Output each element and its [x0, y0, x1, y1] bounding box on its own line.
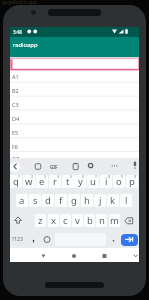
button[interactable]: l [120, 194, 132, 207]
staticText: 6 [82, 175, 85, 179]
staticText: x [51, 214, 57, 227]
button[interactable] [10, 214, 25, 227]
button[interactable] [123, 214, 139, 227]
button[interactable] [41, 233, 53, 246]
staticText: n [99, 214, 105, 227]
staticText: 1 [18, 175, 21, 179]
staticText: 3 [44, 175, 47, 179]
staticText: gugelstein app [2, 0, 38, 6]
staticText: d [45, 194, 51, 207]
button[interactable] [38, 249, 49, 261]
staticText: k [110, 194, 116, 207]
staticText: 3:48 [13, 29, 22, 35]
button[interactable]: v [72, 214, 83, 227]
staticText: l [125, 194, 128, 207]
staticText: q [13, 175, 19, 188]
staticText: F6 [12, 143, 19, 150]
staticText: A1 [12, 73, 19, 80]
button[interactable]: p [126, 175, 138, 188]
button[interactable]: GIF [48, 162, 60, 171]
button[interactable]: b [84, 214, 95, 227]
staticText: o [116, 175, 122, 188]
button[interactable]: A1 [10, 69, 139, 83]
button[interactable] [69, 249, 80, 261]
button[interactable]: c [60, 214, 71, 227]
button[interactable]: E5 [10, 125, 139, 139]
staticText: y [78, 175, 83, 188]
button[interactable]: z [35, 214, 46, 227]
button[interactable]: f [55, 194, 67, 207]
staticText: ?123 [12, 236, 23, 243]
staticText: s [33, 194, 38, 207]
button[interactable]: G7 [10, 151, 139, 165]
button[interactable]: u [87, 175, 99, 188]
button[interactable]: t [62, 175, 74, 188]
staticText: g [71, 194, 77, 207]
staticText: GIF [50, 164, 58, 170]
button[interactable]: e [36, 175, 48, 188]
staticText: u [90, 175, 96, 188]
staticText: j [99, 194, 102, 207]
staticText: r [53, 175, 57, 188]
staticText: z [38, 214, 43, 227]
staticText: p [129, 175, 135, 188]
staticText: 7 [95, 175, 98, 179]
staticText: t [66, 175, 70, 188]
button[interactable] [121, 234, 138, 246]
button[interactable]: j [94, 194, 106, 207]
staticText: 2 [31, 175, 34, 179]
button[interactable]: ?123 [10, 233, 25, 246]
staticText: e [39, 175, 45, 188]
button[interactable]: r [49, 175, 61, 188]
button[interactable]: h [81, 194, 93, 207]
button[interactable] [99, 249, 110, 261]
button[interactable]: F6 [10, 139, 139, 153]
staticText: a [19, 194, 25, 207]
staticText: w [25, 175, 33, 188]
button[interactable] [10, 162, 20, 172]
staticText: 8 [108, 175, 111, 179]
button[interactable]: x [48, 214, 59, 227]
button[interactable]: y [74, 175, 86, 188]
staticText: E5 [12, 129, 19, 136]
staticText: B2 [12, 87, 19, 94]
button[interactable] [11, 59, 139, 71]
staticText: G7 [12, 155, 20, 162]
button[interactable]: q [10, 175, 22, 188]
button[interactable]: a [16, 194, 28, 207]
button[interactable]: m [109, 214, 120, 227]
staticText: 5 [70, 175, 73, 179]
staticText: C3 [12, 101, 19, 108]
button[interactable]: o [113, 175, 125, 188]
staticText: 4 [57, 175, 60, 179]
staticText: v [75, 214, 80, 227]
button[interactable]: C3 [10, 97, 139, 111]
staticText: m [110, 214, 119, 227]
staticText: c [63, 214, 68, 227]
staticText: i [105, 175, 108, 188]
button[interactable]: B2 [10, 83, 139, 97]
staticText: 9 [121, 175, 124, 179]
button[interactable]: D4 [10, 111, 139, 125]
staticText: 0 [134, 175, 137, 179]
staticText: radioapp [13, 41, 38, 49]
button[interactable] [108, 233, 119, 246]
button[interactable]: n [96, 214, 107, 227]
button[interactable]: w [23, 175, 35, 188]
button[interactable]: d [42, 194, 54, 207]
button[interactable] [28, 233, 39, 246]
button[interactable]: s [29, 194, 41, 207]
staticText: h [84, 194, 90, 207]
button[interactable]: g [68, 194, 80, 207]
button[interactable]: k [107, 194, 119, 207]
button[interactable]: i [100, 175, 112, 188]
staticText: D4 [12, 115, 20, 122]
staticText: b [87, 214, 93, 227]
staticText: f [59, 194, 63, 207]
